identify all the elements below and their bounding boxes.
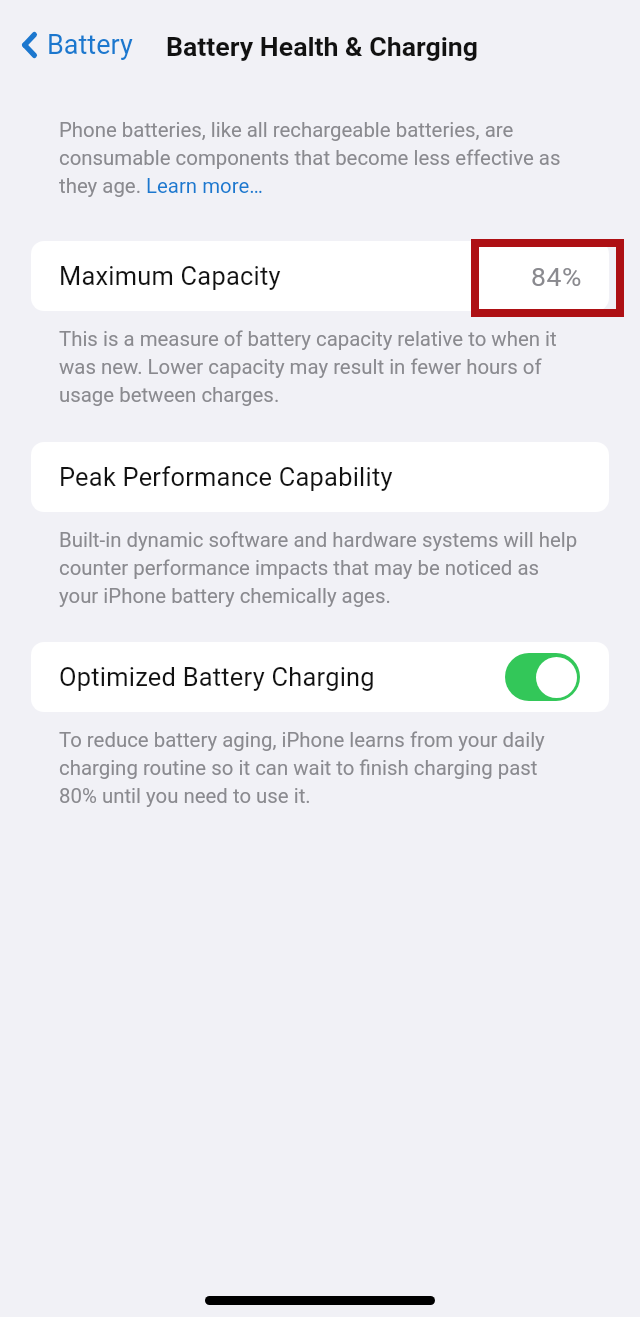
staticText: Optimized Battery Charging — [59, 662, 375, 692]
button[interactable]: Peak Performance Capability — [31, 442, 609, 512]
button[interactable]: Learn more — [146, 172, 264, 198]
staticText: This is a measure of battery capacity re… — [59, 324, 557, 408]
staticText: Peak Performance Capability — [59, 462, 393, 492]
staticText: Battery — [47, 29, 133, 61]
button[interactable]: Back to Battery — [16, 23, 139, 67]
staticText: Battery Health & Charging — [166, 31, 479, 62]
staticText: Phone batteries, like all rechargeable b… — [59, 115, 561, 199]
button[interactable]: Maximum Capacity — [31, 241, 609, 311]
staticText: 84% — [531, 261, 582, 292]
staticText: Built-in dynamic software and hardware s… — [59, 525, 578, 609]
button[interactable]: Optimized Battery Charging — [31, 642, 609, 712]
staticText: Maximum Capacity — [59, 261, 281, 291]
button[interactable]: Optimized Battery Charging, on — [505, 653, 580, 701]
staticText: To reduce battery aging, iPhone learns f… — [59, 725, 545, 809]
